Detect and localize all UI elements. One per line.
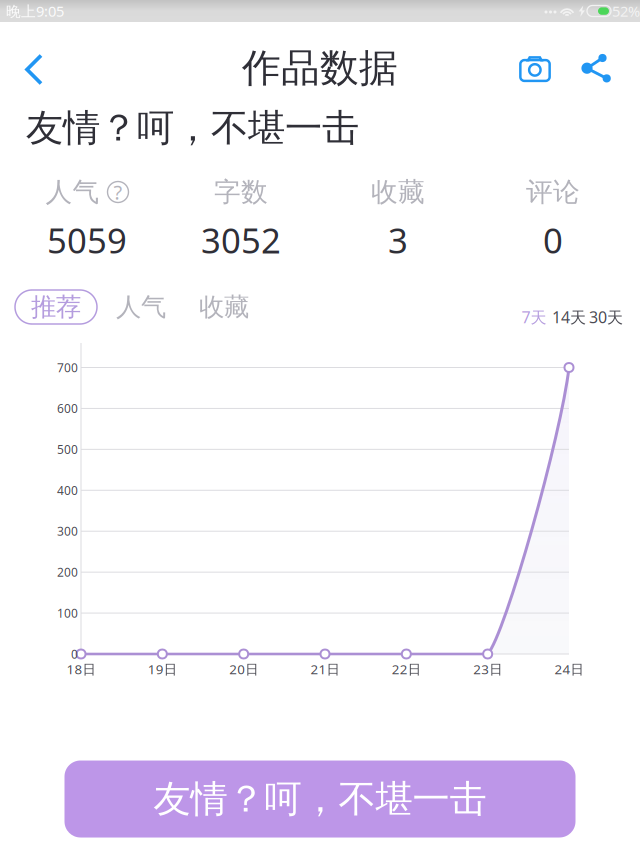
staticText: 评论	[526, 176, 580, 208]
staticText: 24日	[554, 660, 583, 678]
staticText: 23日	[473, 660, 502, 678]
staticText: 300	[57, 523, 78, 539]
staticText: 0	[543, 217, 563, 263]
button[interactable]: 14天	[551, 306, 587, 328]
button[interactable]: 收藏	[189, 290, 259, 324]
staticText: 7天	[521, 306, 546, 328]
button[interactable]: Camera	[507, 40, 563, 96]
staticText: 收藏	[371, 176, 425, 208]
staticText: 14天	[552, 306, 586, 328]
staticText: 100	[57, 605, 78, 621]
staticText: 3052	[201, 217, 281, 263]
button[interactable]: Share	[568, 40, 624, 96]
staticText: ?	[113, 179, 122, 205]
staticText: 200	[57, 564, 78, 580]
staticText: 友情？呵，不堪一击	[26, 105, 359, 151]
staticText: 20日	[229, 660, 258, 678]
button[interactable]: Back	[1, 37, 67, 101]
button[interactable]: 友情？呵，不堪一击	[64, 760, 575, 837]
staticText: 19日	[148, 660, 177, 678]
button[interactable]: 推荐	[15, 290, 97, 324]
staticText: 5059	[47, 217, 127, 263]
staticText: 作品数据	[242, 44, 398, 92]
staticText: 收藏	[199, 291, 249, 322]
button[interactable]: 7天	[520, 306, 548, 328]
staticText: 0	[71, 646, 78, 662]
staticText: 22日	[392, 660, 421, 678]
staticText: 友情？呵，不堪一击	[153, 776, 486, 822]
staticText: 人气	[45, 176, 99, 208]
staticText: 30天	[589, 306, 623, 328]
staticText: 18日	[66, 660, 95, 678]
staticText: 3	[388, 217, 408, 263]
staticText: 600	[57, 400, 78, 416]
staticText: 700	[57, 359, 78, 375]
staticText: 500	[57, 441, 78, 457]
button[interactable]: 人气	[106, 290, 176, 324]
staticText: 推荐	[31, 291, 81, 322]
staticText: 400	[57, 482, 78, 498]
staticText: 21日	[310, 660, 339, 678]
staticText: 52%	[612, 1, 640, 21]
staticText: 字数	[214, 176, 268, 208]
staticText: 晚上9:05	[6, 1, 64, 21]
staticText: 人气	[116, 291, 166, 322]
button[interactable]: 30天	[588, 306, 624, 328]
